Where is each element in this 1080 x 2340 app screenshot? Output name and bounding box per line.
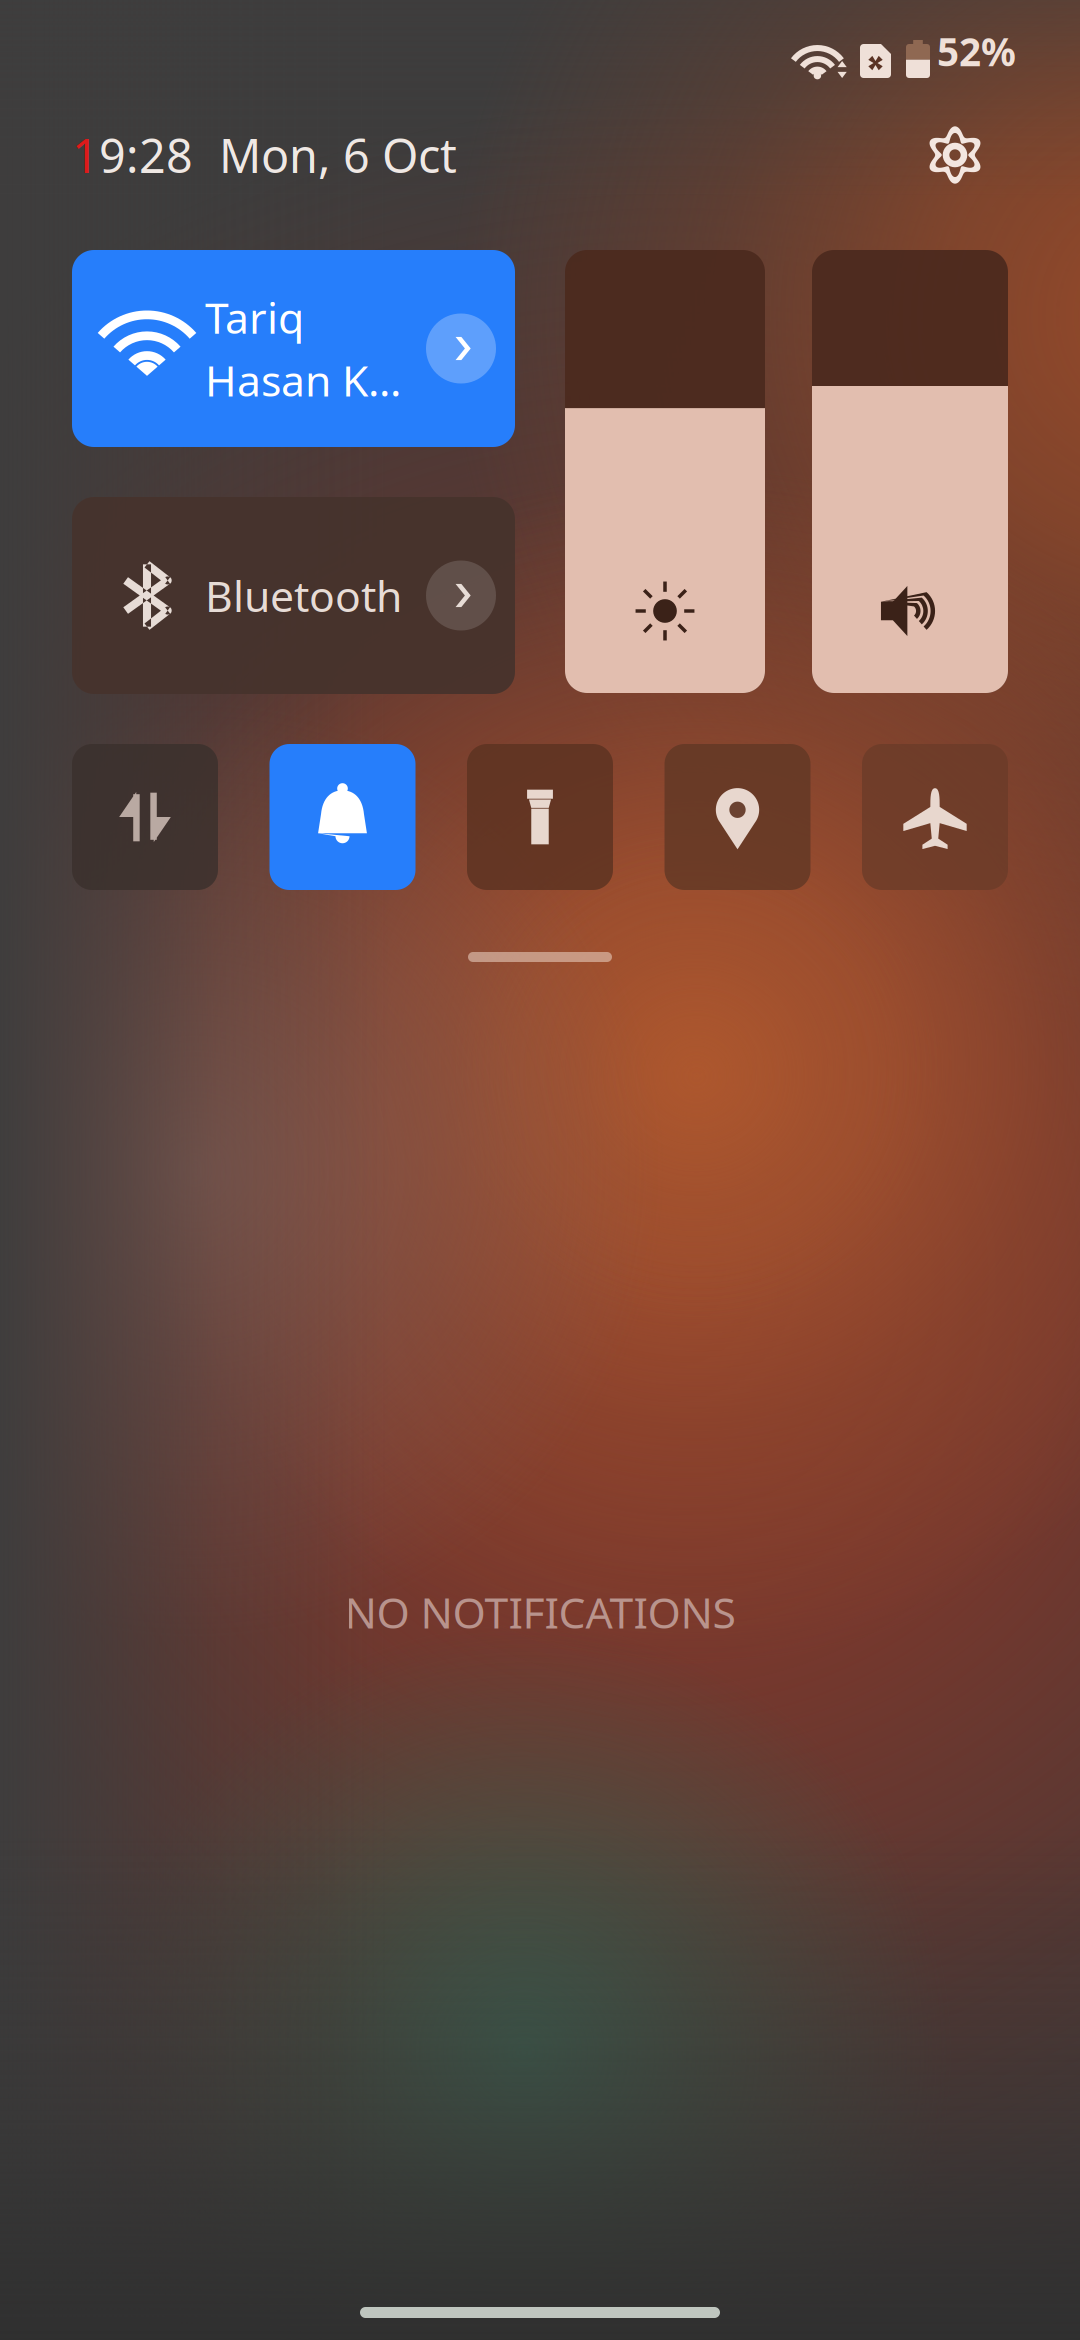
button[interactable]: Volume [812,250,1008,693]
button[interactable]: Airplane mode [862,744,1008,890]
button[interactable]: Flashlight [467,744,613,890]
staticText: Hasan K... [205,351,401,408]
staticText: NO NOTIFICATIONS [344,1584,735,1640]
button[interactable]: Settings [902,112,1008,198]
button[interactable]: Location [664,744,810,890]
staticText: 9:28 [99,124,193,186]
staticText: Bluetooth [205,567,402,624]
button[interactable]: Brightness [565,250,765,693]
button[interactable]: Wi-Fi: Tariq Hasan K… [72,250,515,447]
button[interactable]: Notifications [269,744,415,890]
staticText: 1 [72,124,99,186]
button[interactable]: Mobile data [72,744,218,890]
staticText: Tariq [205,289,304,345]
staticText: 52% [937,26,1016,77]
button[interactable]: Bluetooth [72,497,515,694]
staticText: Mon, 6 Oct [219,124,457,186]
